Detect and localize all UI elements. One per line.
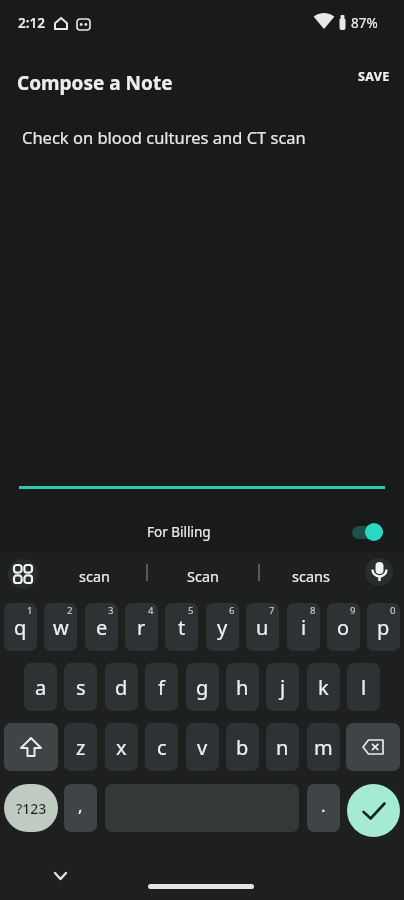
staticText: s [76,674,86,701]
staticText: 5 [188,604,194,617]
staticText: i [301,614,307,641]
staticText: m [314,734,333,761]
button[interactable]: i [287,603,320,651]
staticText: 2 [67,604,73,617]
button[interactable]: n [266,723,299,771]
button[interactable]: a [24,663,57,711]
staticText: Check on blood cultures and CT scan [22,126,306,148]
staticText: 9 [350,604,356,617]
button[interactable]: scan [48,556,142,596]
button[interactable]: r [125,603,158,651]
staticText: r [137,614,146,641]
staticText: z [76,734,86,761]
button[interactable]: h [226,663,259,711]
staticText: e [96,614,108,641]
staticText: f [158,674,165,701]
staticText: scan [79,566,111,586]
button[interactable] [365,558,393,586]
staticText: o [337,614,350,641]
button[interactable] [347,784,400,837]
staticText: a [35,674,47,701]
button[interactable]: t [165,603,198,651]
staticText: 6 [229,604,235,617]
button[interactable]: l [347,663,380,711]
button[interactable]: SAVE [350,62,398,90]
staticText: Compose a Note [17,70,173,96]
staticText: n [276,734,289,761]
staticText: u [256,614,269,641]
staticText: y [217,614,228,641]
button[interactable]: c [145,723,178,771]
staticText: d [115,674,128,701]
button[interactable]: s [64,663,97,711]
staticText: b [236,734,249,761]
staticText: p [377,614,390,641]
button[interactable]: u [246,603,279,651]
button[interactable]: x [105,723,138,771]
staticText: g [196,674,209,701]
staticText: q [14,614,27,641]
button[interactable]: y [206,603,239,651]
staticText: x [116,734,127,761]
button[interactable] [346,723,400,771]
staticText: For Billing [147,523,211,541]
staticText: , [78,794,83,817]
staticText: 2:12 [18,14,45,32]
button[interactable]: p [367,603,400,651]
button[interactable]: ?123 [4,784,58,832]
button[interactable]: d [105,663,138,711]
button[interactable] [8,559,38,589]
button[interactable] [40,862,80,890]
button[interactable]: o [327,603,360,651]
staticText: scans [292,566,330,586]
staticText: k [318,674,329,701]
staticText: h [236,674,249,701]
button[interactable] [348,521,388,543]
staticText: 4 [148,604,154,617]
staticText: 1 [27,604,33,617]
staticText: t [178,614,186,641]
button[interactable]: , [64,784,97,832]
button[interactable]: Scan [152,556,254,596]
button[interactable]: q [4,603,37,651]
button[interactable]: f [145,663,178,711]
button[interactable]: e [85,603,118,651]
staticText: 7 [269,604,275,617]
button[interactable]: . [307,784,340,832]
button[interactable]: m [307,723,340,771]
button[interactable]: z [64,723,97,771]
button[interactable] [4,723,58,771]
staticText: 0 [390,604,396,617]
staticText: 8 [310,604,316,617]
staticText: j [280,674,286,701]
staticText: 3 [108,604,114,617]
button[interactable]: b [226,723,259,771]
staticText: w [53,614,69,641]
button[interactable]: j [266,663,299,711]
staticText: . [321,794,326,817]
button[interactable]: g [186,663,219,711]
staticText: Scan [187,566,220,586]
staticText: v [197,734,208,761]
staticText: l [361,674,367,701]
staticText: c [157,734,167,761]
staticText: ?123 [16,799,47,818]
staticText: 87% [351,14,378,32]
button[interactable]: w [44,603,77,651]
button[interactable]: scans [264,556,358,596]
button[interactable]: k [307,663,340,711]
staticText: SAVE [358,68,390,85]
button[interactable]: v [186,723,219,771]
